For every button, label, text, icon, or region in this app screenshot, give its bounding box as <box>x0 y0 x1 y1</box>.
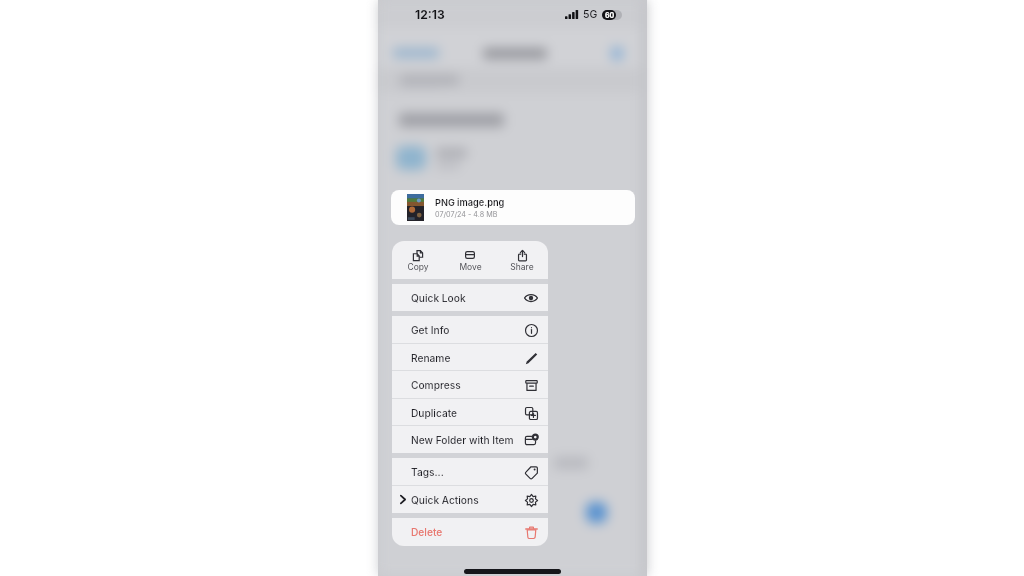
staticText: 07/07/24 - 4.8 MB <box>435 210 498 219</box>
button[interactable]: Tags... <box>392 458 548 486</box>
staticText: 60 <box>605 11 615 19</box>
staticText: Quick Actions <box>411 494 479 506</box>
staticText: Compress <box>411 379 461 391</box>
button[interactable]: PNG image.png <box>391 190 635 225</box>
button[interactable]: Quick Look <box>392 284 548 311</box>
button[interactable]: Compress <box>392 371 548 399</box>
staticText: Share <box>510 262 534 272</box>
button[interactable]: Share <box>496 241 548 279</box>
staticText: Get Info <box>411 324 450 336</box>
staticText: 12:13 <box>415 7 445 22</box>
staticText: Move <box>459 262 482 272</box>
staticText: Quick Look <box>411 292 466 304</box>
staticText: PNG image.png <box>435 197 505 208</box>
staticText: 5G <box>583 8 598 21</box>
staticText: Duplicate <box>411 407 458 419</box>
staticText: Delete <box>411 526 443 538</box>
staticText: Rename <box>411 352 451 364</box>
button[interactable]: Get Info <box>392 316 548 344</box>
button[interactable]: Copy <box>392 241 444 279</box>
button[interactable]: Quick Actions <box>392 486 548 513</box>
button[interactable]: Rename <box>392 344 548 371</box>
button[interactable]: New Folder with Item <box>392 426 548 453</box>
staticText: Tags... <box>411 466 444 478</box>
button[interactable]: Delete <box>392 518 548 546</box>
button[interactable]: Move <box>444 241 496 279</box>
staticText: New Folder with Item <box>411 434 514 446</box>
button[interactable]: Duplicate <box>392 399 548 426</box>
staticText: Copy <box>407 262 429 272</box>
